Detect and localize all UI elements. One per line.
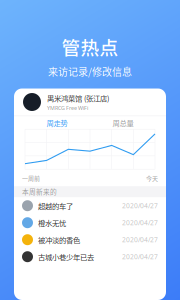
staticText: 周总量 — [112, 117, 133, 128]
staticText: 古城小巷少年已去 — [38, 251, 94, 262]
button[interactable]: 古城小巷少年已去 — [14, 248, 166, 265]
button[interactable]: 周总量 — [90, 117, 156, 129]
button[interactable]: 被冲淡的香色 — [14, 231, 166, 248]
staticText: 2020/04/27 — [122, 235, 158, 244]
staticText: 管热点 — [61, 33, 118, 60]
staticText: 被冲淡的香色 — [38, 234, 80, 245]
staticText: 禺米鸿菜馆 (张江店) — [47, 93, 109, 103]
staticText: 超越的车了 — [38, 200, 73, 211]
button[interactable]: 周走势 — [24, 117, 90, 129]
staticText: 一周前 — [22, 174, 40, 183]
staticText: 2020/04/27 — [122, 201, 158, 210]
staticText: 来访记录/修改信息 — [48, 64, 132, 78]
staticText: 本周新来的 — [22, 187, 57, 197]
button[interactable]: 超越的车了 — [14, 197, 166, 214]
staticText: YMRCG Free WiFi — [47, 104, 88, 111]
button[interactable]: 橙水无忧 — [14, 214, 166, 231]
staticText: 2020/04/27 — [122, 218, 158, 227]
staticText: 2020/04/27 — [122, 252, 158, 261]
staticText: 橙水无忧 — [38, 217, 66, 228]
staticText: 今天 — [146, 174, 158, 183]
staticText: 周走势 — [46, 117, 67, 128]
